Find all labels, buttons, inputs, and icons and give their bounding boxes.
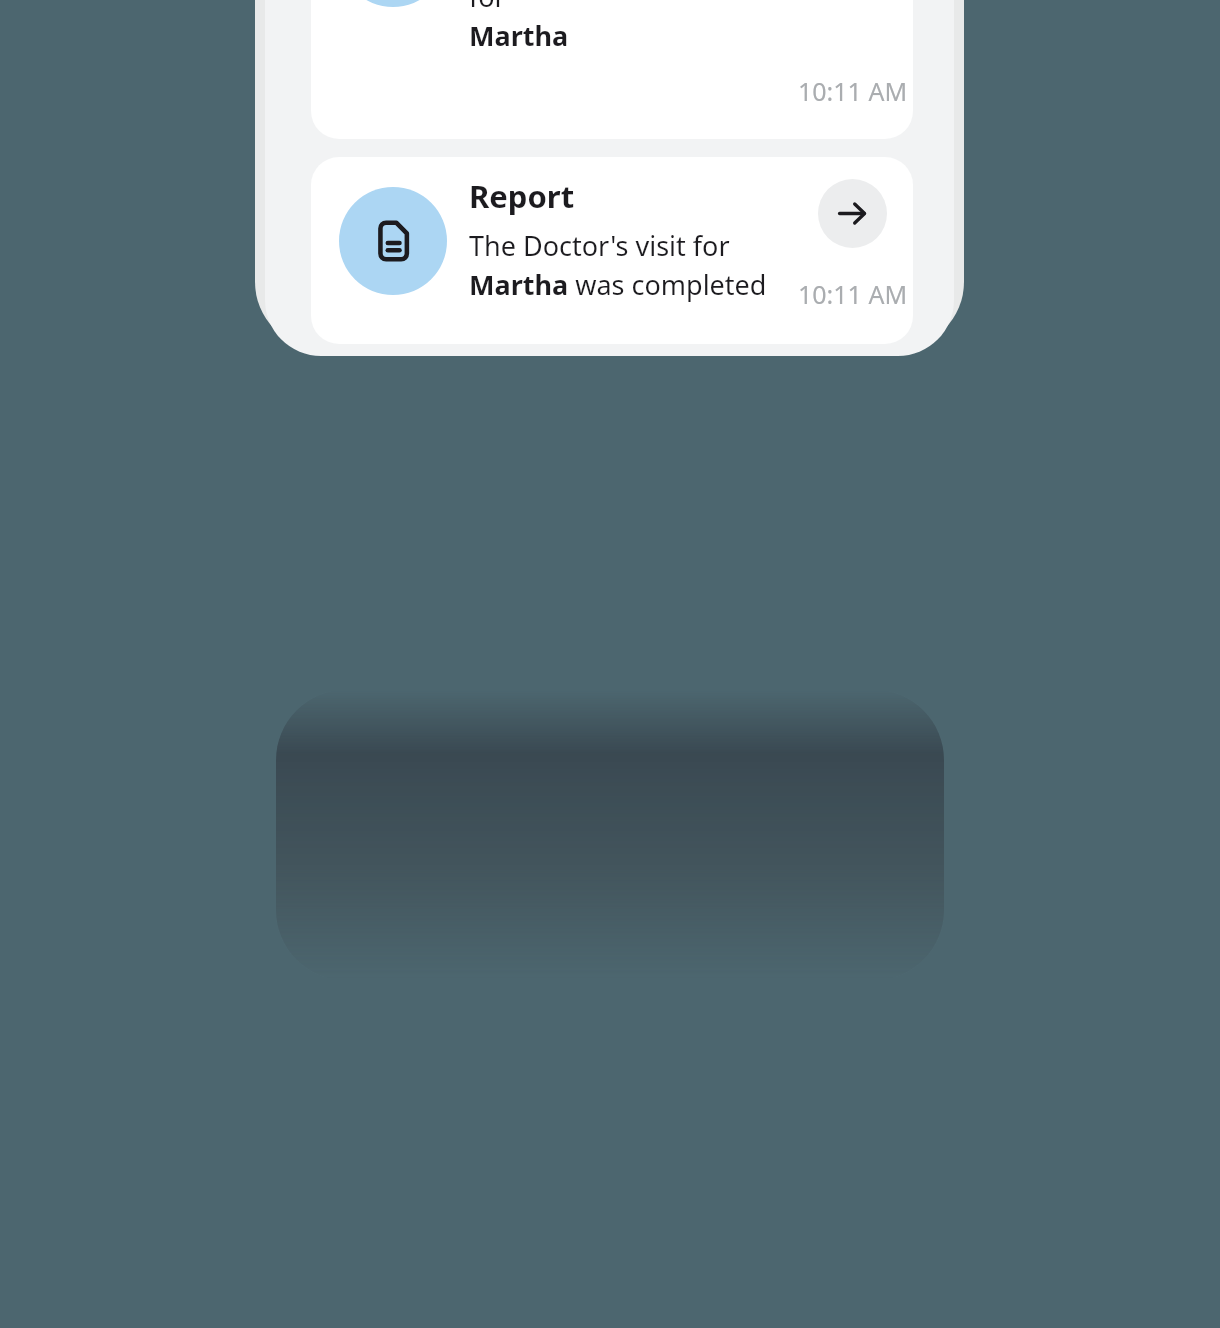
staticText: The Doctor's visit for Martha was comple…	[469, 227, 767, 303]
staticText: We found a Specialist for Martha	[469, 0, 769, 54]
button[interactable]: Open notification	[818, 179, 887, 248]
staticText: 10:11 AM	[798, 277, 908, 311]
button[interactable]: Report	[311, 157, 913, 344]
button[interactable]: Wellness Check	[311, 0, 913, 139]
staticText: Report	[469, 175, 575, 217]
staticText: 10:11 AM	[798, 74, 908, 108]
